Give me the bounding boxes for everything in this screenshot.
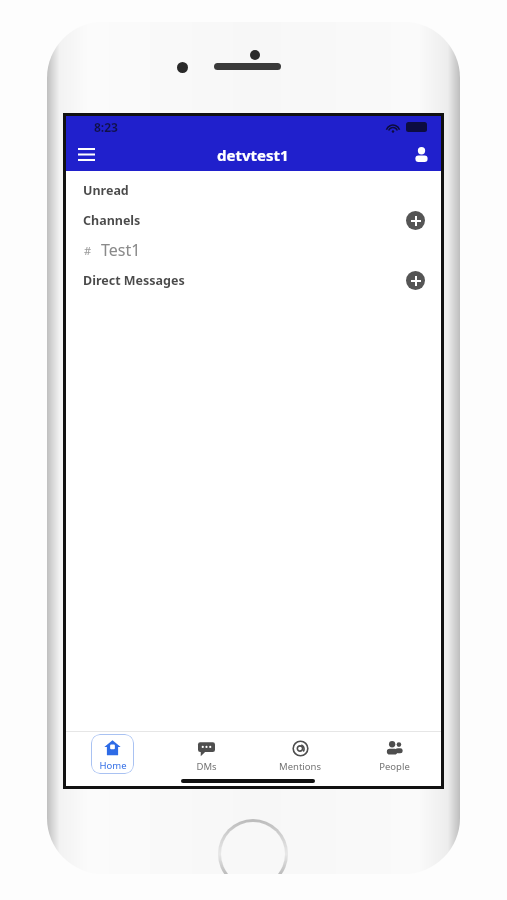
button[interactable]: DMs [159,735,253,773]
button[interactable]: Unread [66,175,441,205]
button[interactable]: Add Channels [406,211,425,230]
staticText: Unread [83,182,129,199]
button[interactable]: Home [66,734,159,774]
staticText: 8:23 [94,119,118,135]
staticText: Mentions [279,760,321,773]
staticText: Home [99,759,127,772]
staticText: detvtest1 [217,145,289,165]
button[interactable]: # [66,235,441,265]
button[interactable]: People [347,735,441,773]
button[interactable]: Add Direct Messages [406,271,425,290]
staticText: Channels [83,212,141,229]
staticText: DMs [196,760,217,773]
button[interactable]: Channels [66,205,441,235]
button[interactable]: Direct Messages [66,265,441,295]
button[interactable]: Mentions [253,735,347,773]
button[interactable]: Account profile [401,138,441,171]
button[interactable]: Open navigation menu [66,138,106,171]
staticText: Direct Messages [83,272,185,289]
staticText: Test1 [101,239,141,261]
staticText: # [84,243,92,258]
staticText: People [379,760,410,773]
